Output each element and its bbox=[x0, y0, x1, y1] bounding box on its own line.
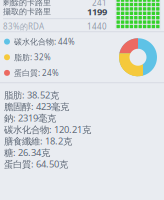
staticText: 脂肪: 38.52克 bbox=[4, 89, 59, 101]
staticText: 剩餘的卡路里 bbox=[3, 0, 51, 8]
staticText: 攝取的卡路里 bbox=[3, 7, 51, 17]
staticText: 膽固醇: 423毫克 bbox=[4, 100, 69, 113]
staticText: 糖: 26.34克 bbox=[4, 146, 50, 159]
staticText: 膳食纖維: 18.2克 bbox=[4, 135, 72, 147]
staticText: 1440 bbox=[87, 21, 107, 32]
staticText: 83%的RDA bbox=[3, 21, 44, 32]
staticText: 1199 bbox=[87, 5, 107, 18]
staticText: 脂肪: 32% bbox=[14, 52, 51, 62]
staticText: 蛋白質: 24% bbox=[14, 68, 59, 78]
staticText: 碳水化合物: 44% bbox=[14, 36, 75, 47]
staticText: 241 bbox=[92, 0, 107, 8]
staticText: 碳水化合物: 120.21克 bbox=[4, 123, 91, 136]
staticText: 蛋白質: 64.50克 bbox=[4, 158, 68, 170]
staticText: 鈉: 2319毫克 bbox=[4, 112, 56, 124]
